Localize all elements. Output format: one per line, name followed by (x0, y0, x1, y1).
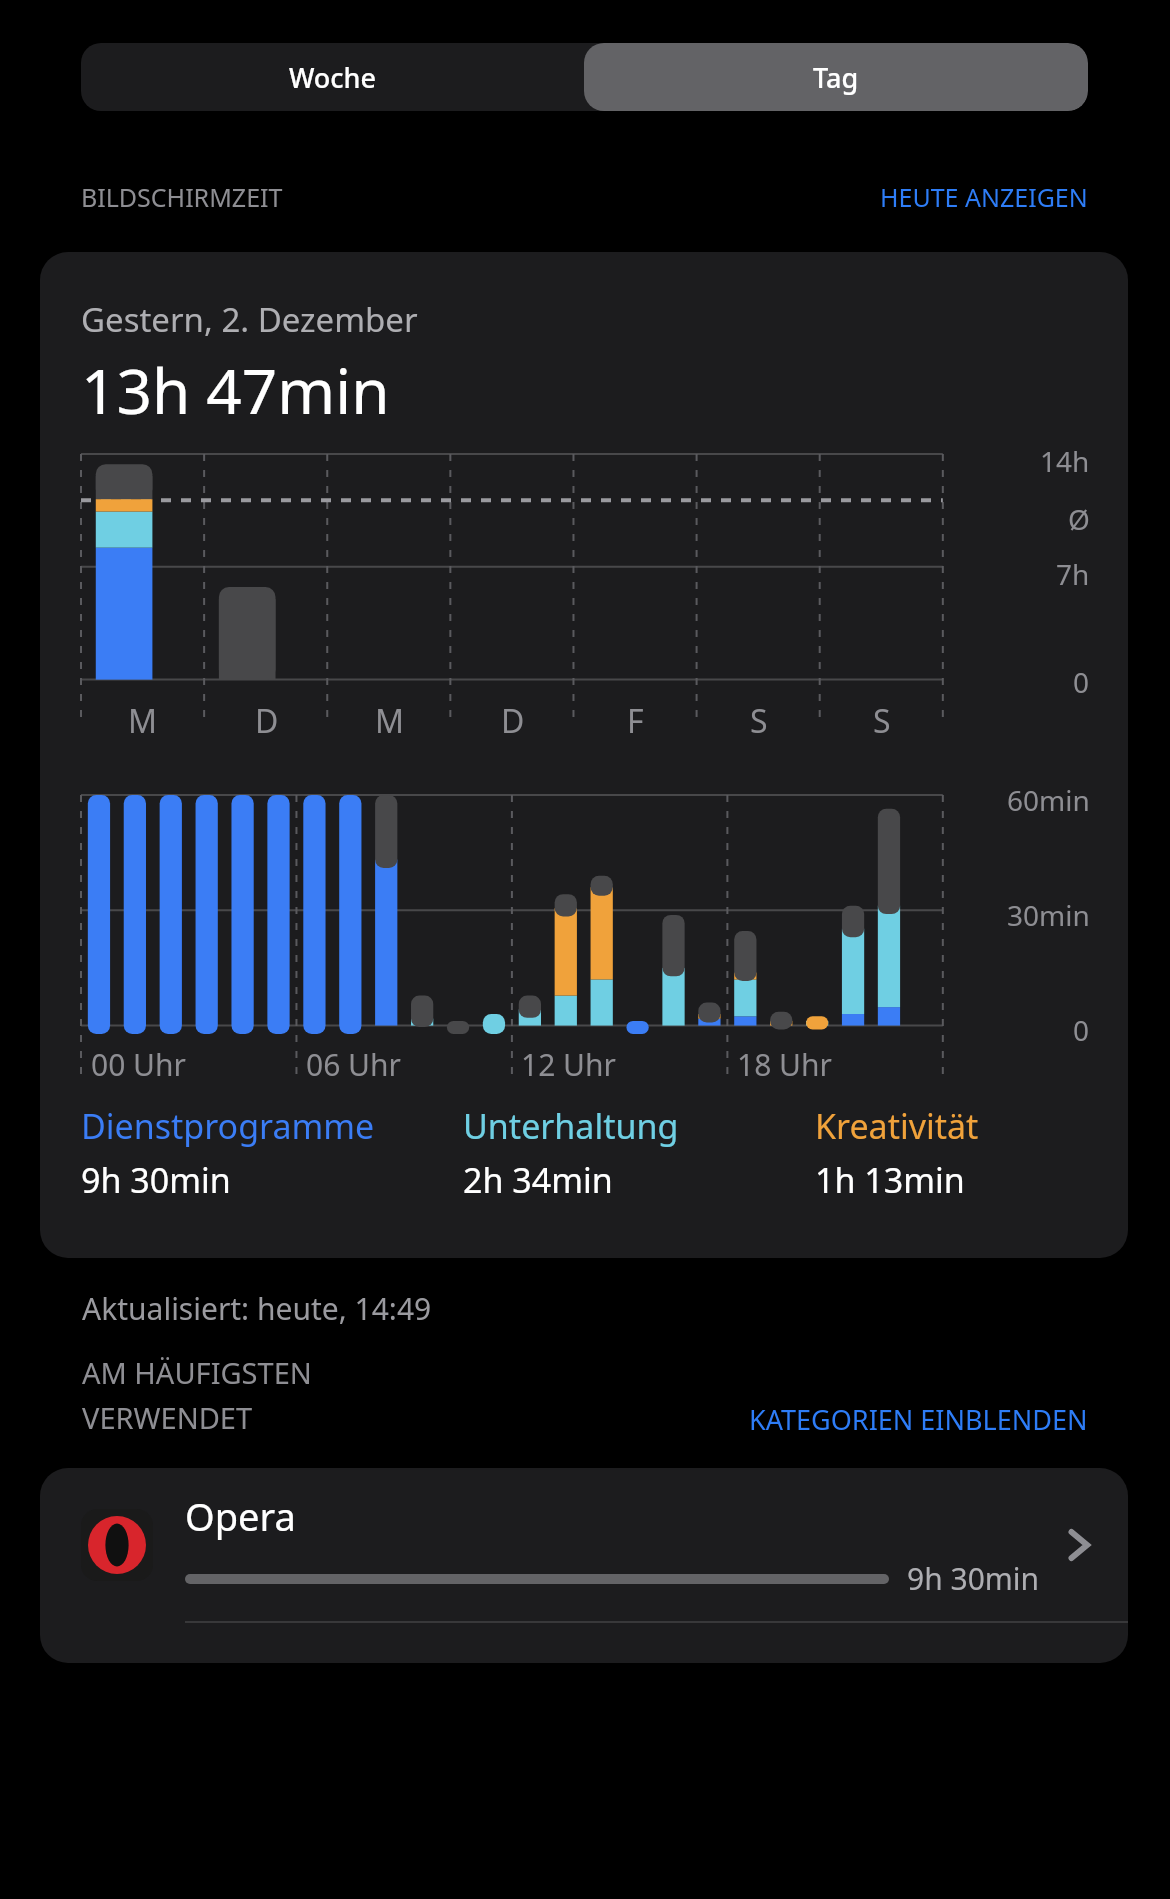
staticText: KATEGORIEN EINBLENDEN (749, 1401, 1088, 1438)
staticText: 9h 30min (907, 1558, 1040, 1599)
staticText: M (375, 699, 405, 743)
staticText: 0 (1073, 663, 1090, 701)
button[interactable]: Tag (584, 43, 1088, 111)
button[interactable]: Unterhaltung (463, 1103, 815, 1203)
staticText: D (501, 699, 525, 743)
button[interactable]: KATEGORIEN EINBLENDEN (749, 1401, 1088, 1438)
staticText: 18 Uhr (737, 1044, 832, 1085)
staticText: Tag (813, 59, 859, 96)
button[interactable]: Dienstprogramme (81, 1103, 463, 1203)
staticText: AM HÄUFIGSTEN VERWENDET (82, 1353, 312, 1438)
staticText: 9h 30min (81, 1157, 231, 1203)
staticText: Opera (185, 1490, 296, 1542)
staticText: S (750, 699, 768, 743)
button[interactable]: Woche (81, 43, 584, 111)
staticText: 30min (1007, 896, 1090, 934)
staticText: 13h 47min (81, 348, 390, 432)
staticText: 2h 34min (463, 1157, 613, 1203)
staticText: M (128, 699, 158, 743)
staticText: 06 Uhr (306, 1044, 401, 1085)
staticText: 1h 13min (815, 1157, 965, 1203)
staticText: Aktualisiert: heute, 14:49 (82, 1288, 432, 1329)
staticText: 00 Uhr (91, 1044, 186, 1085)
staticText: Ø (1068, 500, 1090, 538)
staticText: Gestern, 2. Dezember (81, 297, 418, 342)
staticText: Unterhaltung (463, 1103, 679, 1149)
staticText: Kreativität (815, 1103, 979, 1149)
staticText: 14h (1040, 442, 1090, 480)
button[interactable]: HEUTE ANZEIGEN (880, 180, 1088, 214)
button[interactable]: Kreativität (815, 1103, 1090, 1203)
staticText: 7h (1056, 555, 1090, 593)
other: Details anzeigen (1058, 1525, 1098, 1565)
staticText: 12 Uhr (521, 1044, 616, 1085)
staticText: BILDSCHIRMZEIT (81, 180, 283, 214)
staticText: HEUTE ANZEIGEN (880, 180, 1088, 214)
staticText: Woche (289, 59, 377, 96)
staticText: Dienstprogramme (81, 1103, 375, 1149)
button[interactable]: Gestern, 2. Dezember (40, 252, 1128, 1258)
staticText: D (255, 699, 279, 743)
staticText: F (627, 699, 644, 743)
staticText: 0 (1073, 1011, 1090, 1049)
staticText: S (873, 699, 891, 743)
button[interactable]: Opera (40, 1490, 1128, 1599)
staticText: 60min (1007, 781, 1090, 819)
